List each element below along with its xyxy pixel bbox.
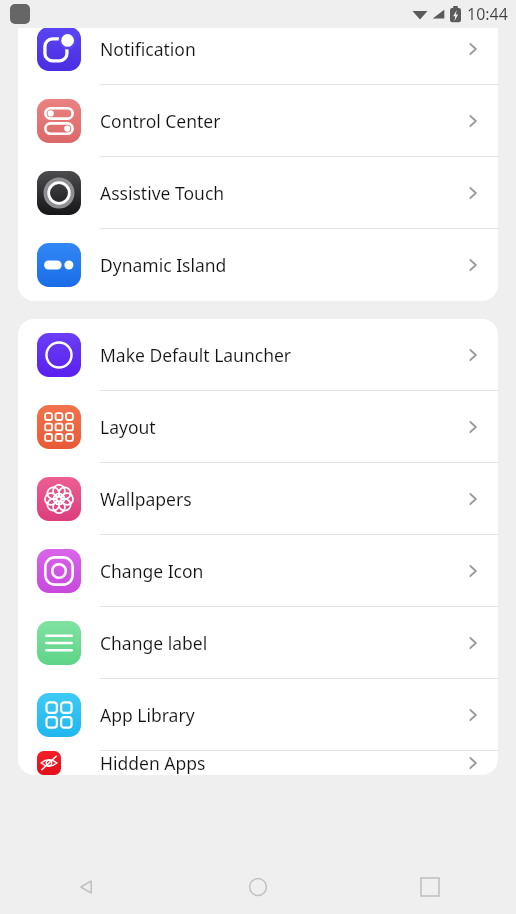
button[interactable]: App Library — [18, 679, 498, 751]
staticText: Make Default Launcher — [100, 343, 462, 367]
staticText: Change Icon — [100, 559, 462, 583]
staticText: Control Center — [100, 109, 462, 133]
button[interactable]: Dynamic Island — [18, 229, 498, 301]
button[interactable]: Back — [62, 863, 110, 911]
staticText: Hidden Apps — [100, 751, 462, 775]
staticText: Notification — [100, 37, 462, 61]
staticText: Dynamic Island — [100, 253, 462, 277]
button[interactable]: Notification — [18, 28, 498, 85]
staticText: Wallpapers — [100, 487, 462, 511]
staticText: 10:44 — [467, 3, 508, 25]
staticText: App Library — [100, 703, 462, 727]
button[interactable]: Home — [234, 863, 282, 911]
button[interactable]: Wallpapers — [18, 463, 498, 535]
button[interactable]: Hidden Apps — [18, 751, 498, 775]
staticText: Assistive Touch — [100, 181, 462, 205]
button[interactable]: Assistive Touch — [18, 157, 498, 229]
button[interactable]: Recent apps — [406, 863, 454, 911]
staticText: Layout — [100, 415, 462, 439]
button[interactable]: Make Default Launcher — [18, 319, 498, 391]
button[interactable]: Layout — [18, 391, 498, 463]
button[interactable]: Change label — [18, 607, 498, 679]
staticText: Change label — [100, 631, 462, 655]
button[interactable]: Control Center — [18, 85, 498, 157]
button[interactable]: Change Icon — [18, 535, 498, 607]
